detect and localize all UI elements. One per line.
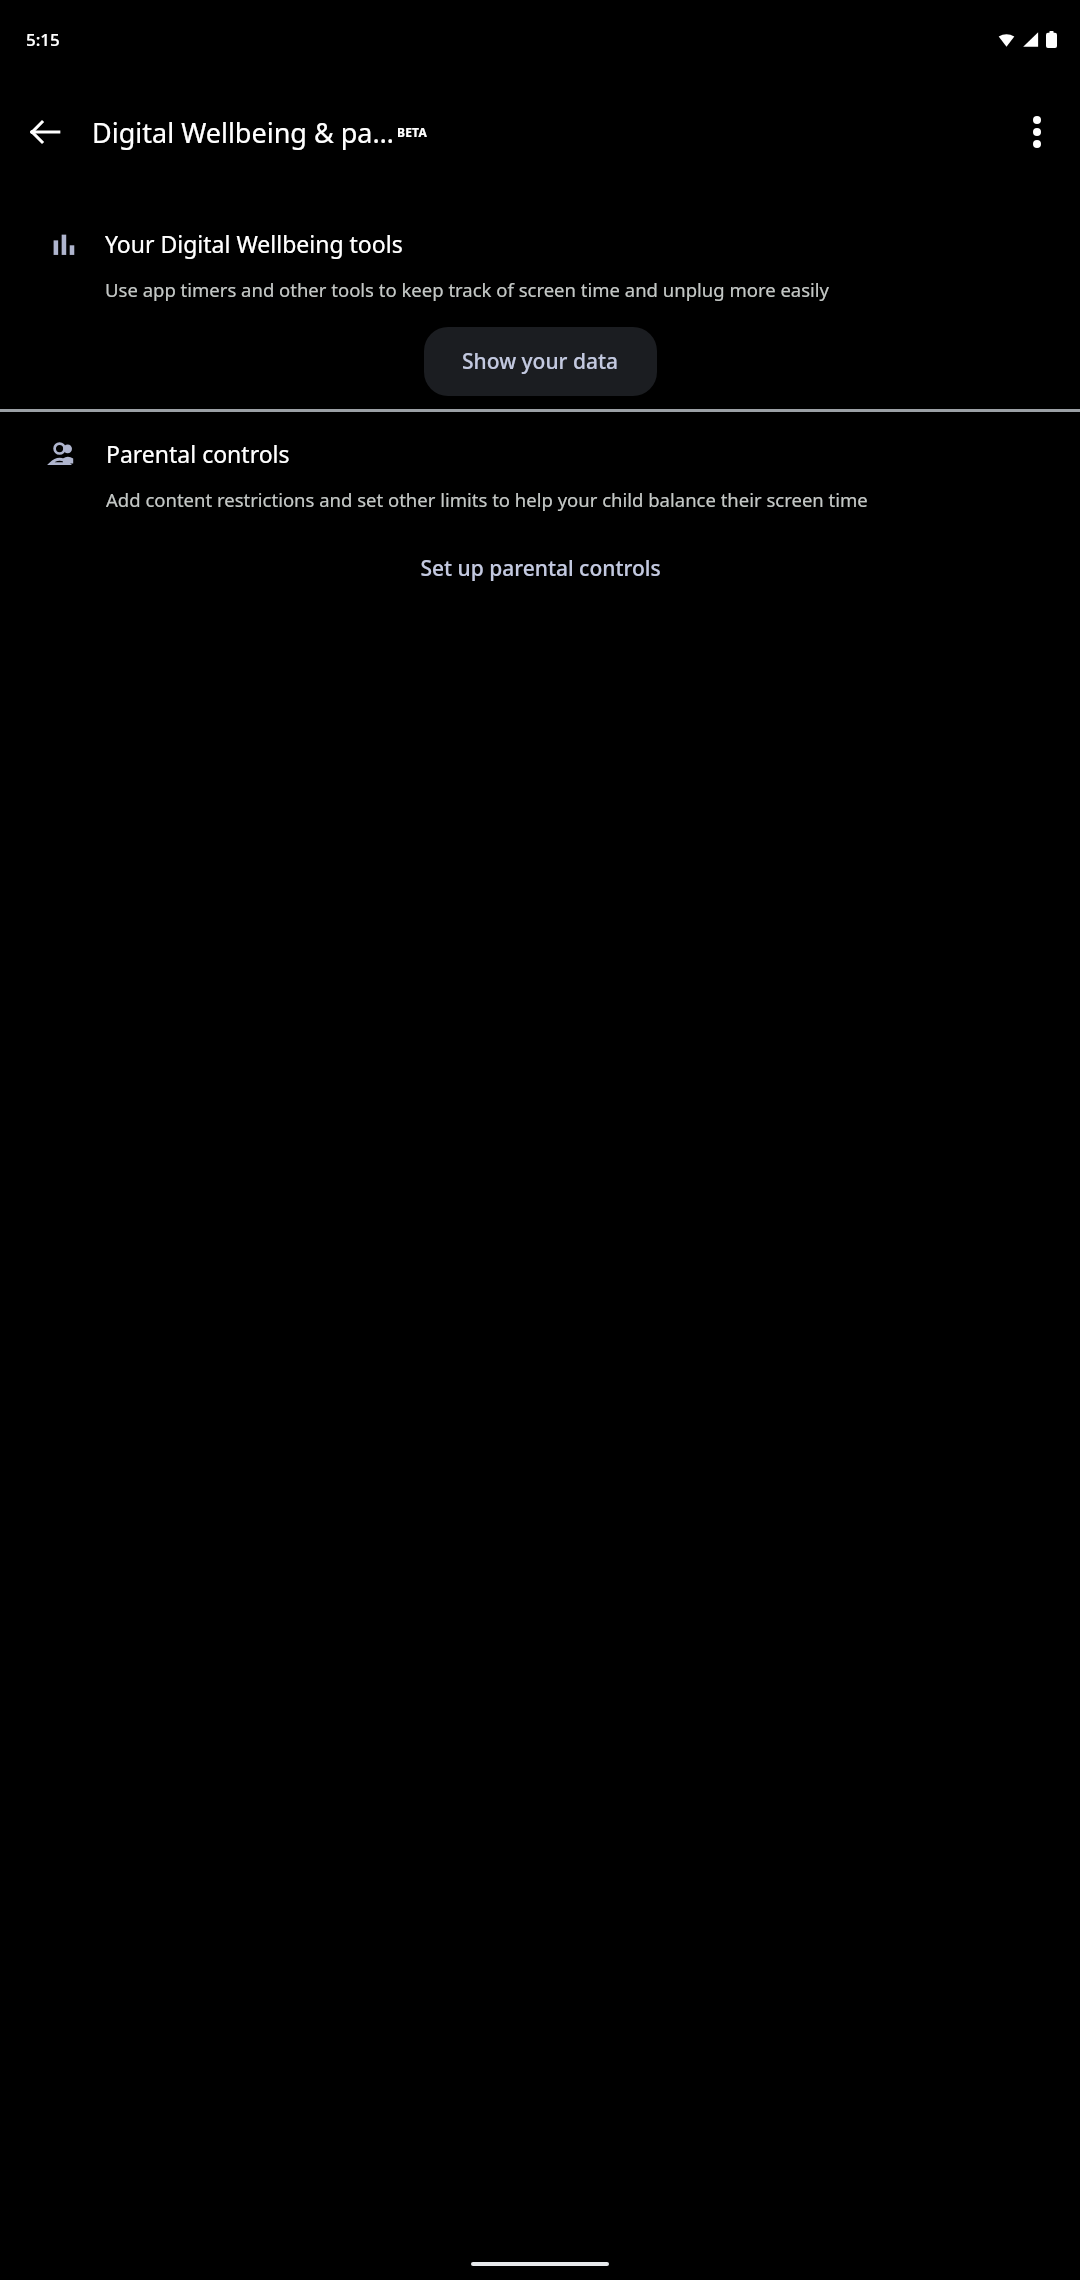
button[interactable]: Back — [14, 101, 76, 163]
staticText: Your Digital Wellbeing tools — [105, 228, 403, 259]
button[interactable]: Set up parental controls — [390, 538, 691, 599]
staticText: Show your data — [462, 347, 619, 376]
staticText: 5:15 — [26, 28, 60, 51]
staticText: Use app timers and other tools to keep t… — [105, 277, 830, 302]
staticText: BETA — [397, 124, 427, 140]
staticText: Digital Wellbeing & pa… — [92, 114, 394, 151]
staticText: Set up parental controls — [420, 554, 661, 583]
staticText: Parental controls — [106, 438, 290, 469]
staticText: Add content restrictions and set other l… — [106, 487, 868, 512]
button[interactable]: More options — [1006, 101, 1068, 163]
button[interactable]: Show your data — [424, 327, 657, 396]
